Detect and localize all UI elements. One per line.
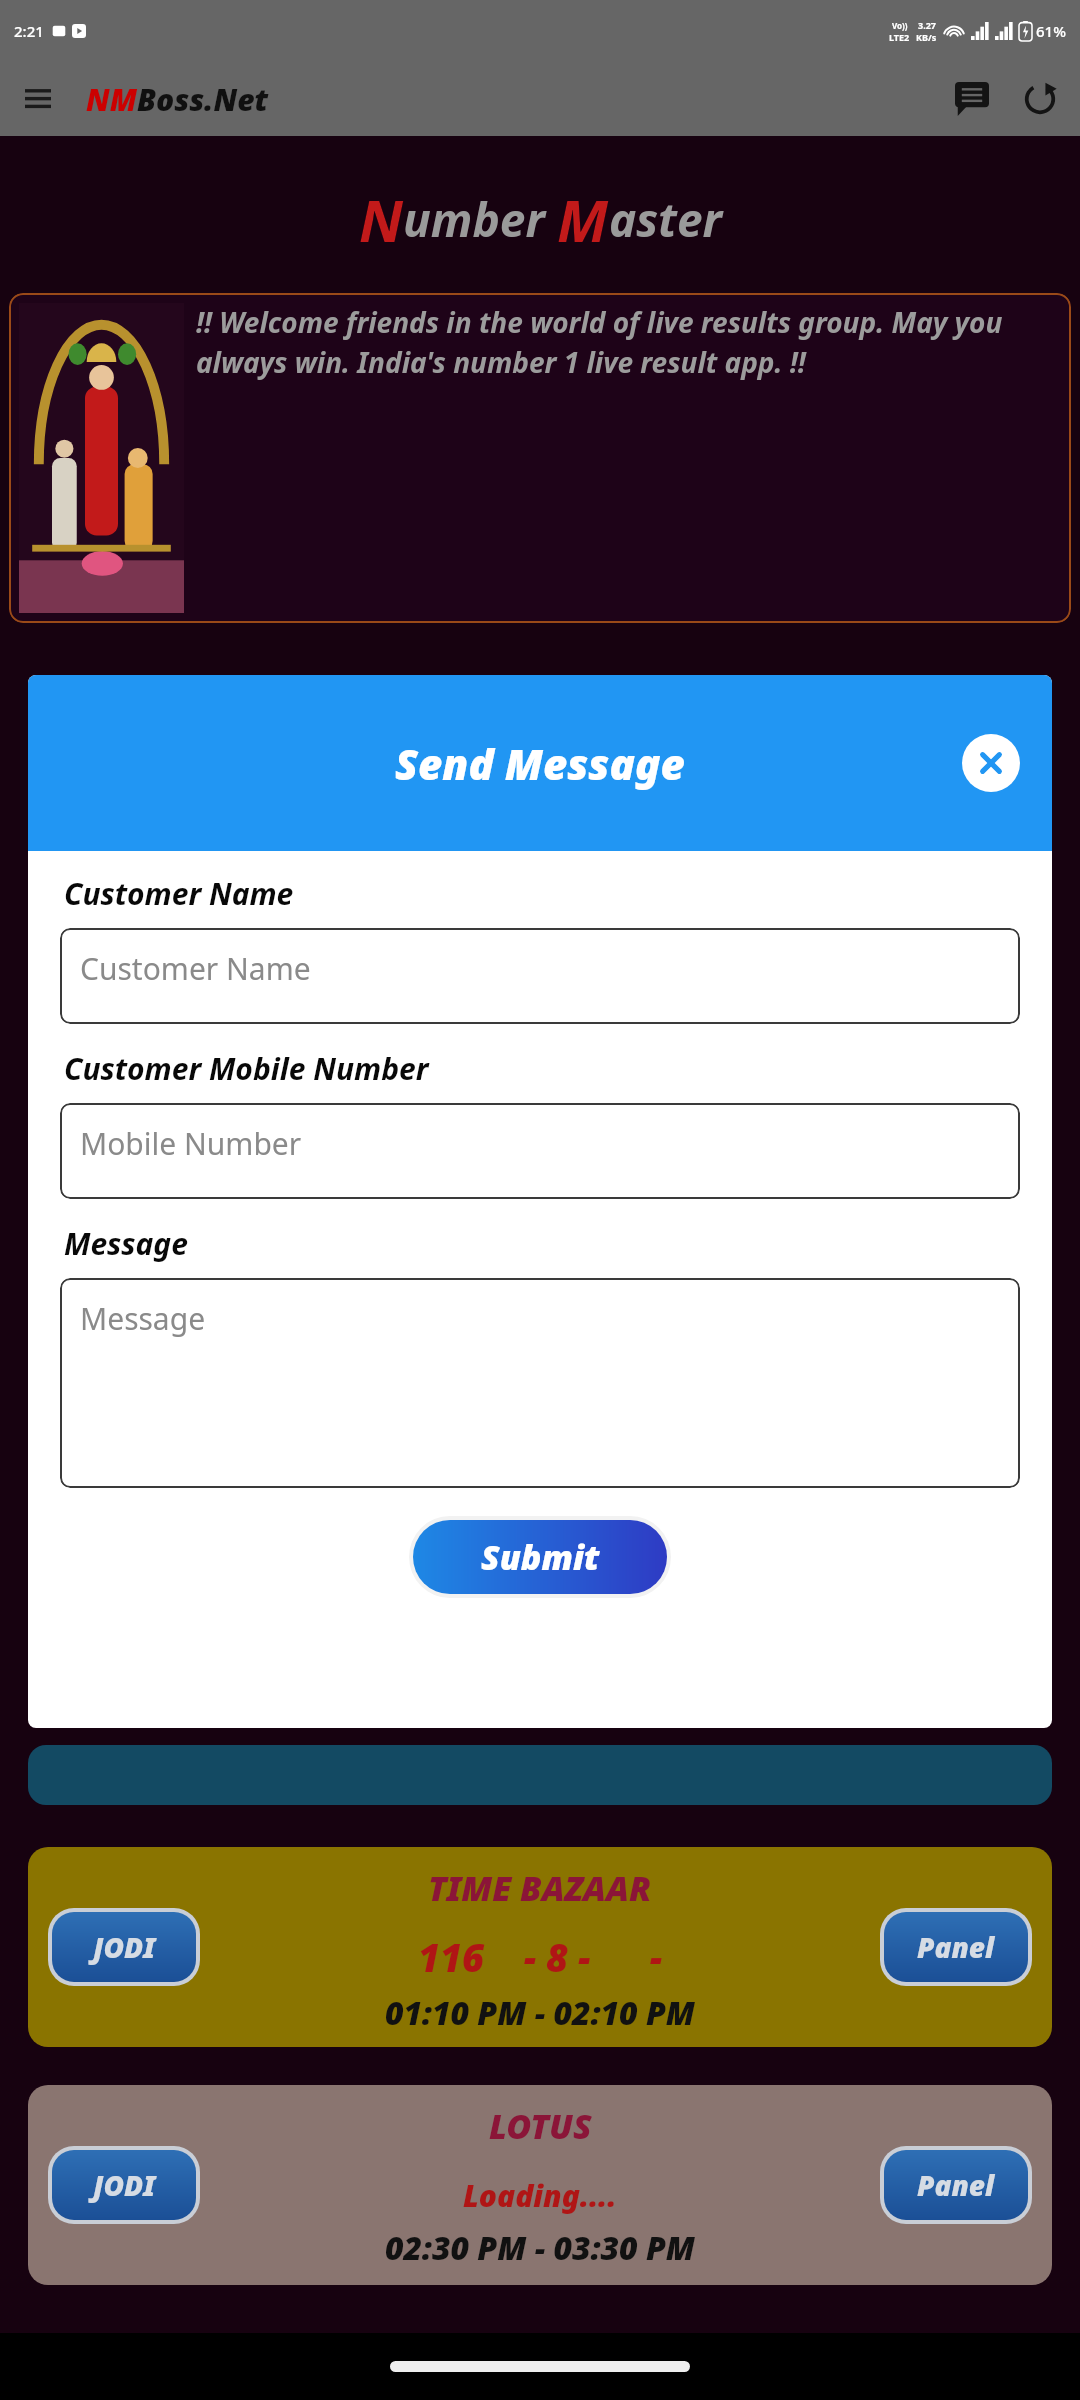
staticText: NM: [86, 79, 137, 120]
staticText: KB/s: [916, 31, 937, 43]
button[interactable]: Submit: [413, 1520, 667, 1594]
staticText: aster: [609, 188, 722, 251]
button[interactable]: Menu: [14, 75, 62, 123]
button[interactable]: Panel: [884, 2150, 1028, 2220]
staticText: Panel: [917, 1928, 995, 1966]
button[interactable]: Panel: [884, 1912, 1028, 1982]
staticText: !! Welcome friends in the world of live …: [196, 303, 1061, 382]
staticText: Customer Mobile Number: [64, 1048, 429, 1089]
staticText: Submit: [481, 1534, 600, 1580]
button[interactable]: Customer Name: [60, 928, 1020, 1024]
staticText: Send Message: [395, 735, 685, 792]
staticText: Message: [64, 1223, 188, 1264]
button[interactable]: JODI: [52, 2150, 196, 2220]
button[interactable]: Refresh: [1014, 73, 1066, 125]
staticText: M: [557, 180, 609, 259]
button[interactable]: !! Welcome friends in the world of live …: [9, 293, 1071, 623]
staticText: Vo)): [892, 20, 908, 31]
staticText: Customer Name: [80, 948, 311, 989]
staticText: JODI: [93, 1928, 156, 1966]
staticText: Loading....: [463, 2175, 617, 2216]
staticText: 2:21: [14, 21, 44, 41]
staticText: Message: [80, 1298, 206, 1339]
button[interactable]: Messages: [946, 73, 998, 125]
button[interactable]: Message: [60, 1278, 1020, 1488]
staticText: JODI: [93, 2166, 156, 2204]
button[interactable]: [28, 1745, 1052, 1805]
staticText: 02:30 PM - 03:30 PM: [385, 2226, 695, 2270]
staticText: TIME BAZAAR: [428, 1865, 652, 1911]
staticText: 61%: [1036, 21, 1066, 41]
staticText: umber: [403, 188, 557, 251]
staticText: N: [359, 180, 403, 259]
staticText: LTE2: [889, 31, 910, 43]
button[interactable]: TIME BAZAAR: [28, 1847, 1052, 2047]
staticText: Customer Name: [64, 873, 294, 914]
button[interactable]: JODI: [52, 1912, 196, 1982]
staticText: LOTUS: [489, 2103, 592, 2149]
staticText: 3.27: [918, 19, 936, 31]
button[interactable]: LOTUS: [28, 2085, 1052, 2285]
staticText: 01:10 PM - 02:10 PM: [385, 1991, 695, 2035]
button[interactable]: Mobile Number: [60, 1103, 1020, 1199]
staticText: 116 - 8 - -: [418, 1931, 663, 1983]
button[interactable]: Close: [962, 734, 1020, 792]
staticText: Boss.Net: [137, 79, 269, 120]
staticText: Mobile Number: [80, 1123, 302, 1164]
staticText: Panel: [917, 2166, 995, 2204]
